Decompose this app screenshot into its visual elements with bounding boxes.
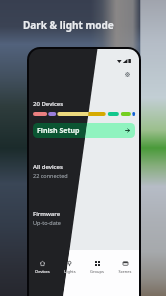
staticText: Groups: [90, 269, 104, 274]
staticText: Scenes: [118, 269, 132, 274]
button[interactable]: Scenes: [111, 250, 139, 296]
staticText: 20 Devices: [33, 100, 64, 108]
staticText: Firmware: [33, 210, 61, 218]
staticText: All devices: [33, 163, 63, 171]
button[interactable]: Scenes: [111, 250, 139, 296]
staticText: Up-to-date: [33, 219, 61, 226]
button[interactable]: Finish Setup: [33, 123, 135, 138]
staticText: Finish Setup: [37, 126, 80, 136]
button[interactable]: Settings: [121, 69, 133, 79]
button[interactable]: Groups: [83, 250, 111, 296]
button[interactable]: Devices: [29, 250, 56, 296]
button[interactable]: Devices: [29, 250, 56, 296]
staticText: Devices: [35, 269, 50, 274]
button[interactable]: Finish Setup: [33, 123, 135, 138]
button[interactable]: Firmware: [29, 210, 139, 226]
staticText: Dark & light mode: [23, 18, 114, 32]
staticText: Up-to-date: [33, 219, 61, 226]
staticText: Lights: [64, 269, 76, 274]
button[interactable]: Firmware: [29, 210, 139, 226]
staticText: Finish Setup: [37, 126, 80, 136]
staticText: 20 Devices: [33, 100, 64, 108]
button[interactable]: Groups: [83, 250, 111, 296]
button[interactable]: Lights: [56, 250, 83, 296]
staticText: Devices: [35, 269, 50, 274]
staticText: Lights: [64, 269, 76, 274]
button[interactable]: All devices: [29, 163, 139, 179]
staticText: 22 connected: [33, 172, 68, 179]
button[interactable]: Lights: [56, 250, 83, 296]
staticText: Groups: [90, 269, 104, 274]
button[interactable]: All devices: [29, 163, 139, 179]
staticText: Scenes: [118, 269, 132, 274]
button[interactable]: Settings: [121, 69, 133, 79]
staticText: 22 connected: [33, 172, 68, 179]
staticText: All devices: [33, 163, 63, 171]
staticText: Firmware: [33, 210, 61, 218]
